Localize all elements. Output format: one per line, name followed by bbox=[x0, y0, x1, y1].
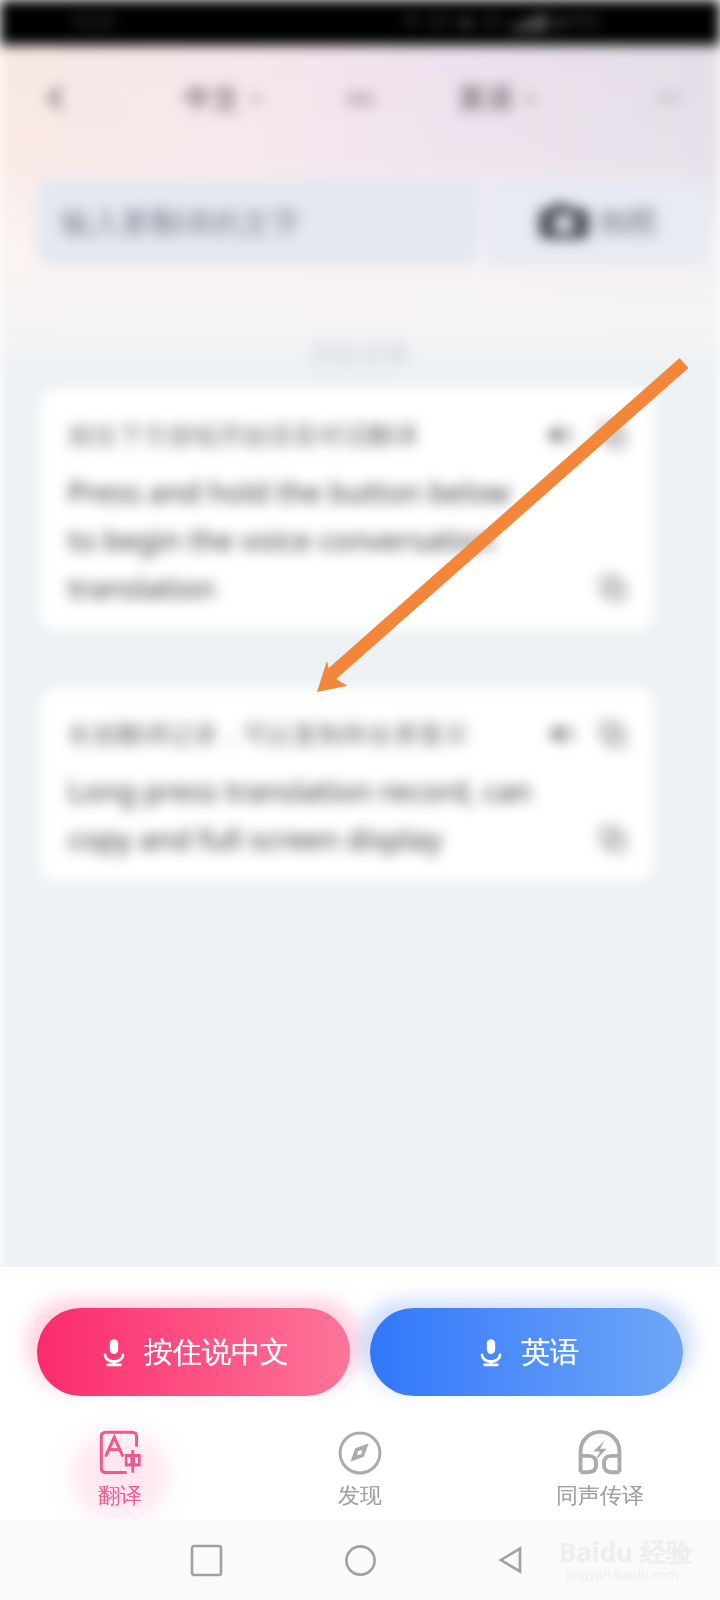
button[interactable]: 拍照 bbox=[485, 180, 709, 265]
staticText: Baidu 经验 bbox=[559, 1534, 692, 1570]
button[interactable]: 按住下方按钮开始语音对话翻译 bbox=[40, 388, 654, 631]
button[interactable]: 发现 bbox=[240, 1429, 480, 1510]
button[interactable]: Home bbox=[335, 1535, 385, 1585]
button[interactable]: 英语 bbox=[454, 75, 540, 122]
button[interactable]: Play audio bbox=[544, 715, 582, 753]
button[interactable]: Copy bbox=[594, 569, 632, 607]
staticText: 发现 bbox=[338, 1482, 382, 1510]
staticText: 10:24 bbox=[70, 9, 114, 32]
staticText: Long press translation record, can copy … bbox=[68, 771, 594, 858]
button[interactable]: 长按翻译记录，可以复制和全屏显示 bbox=[40, 687, 654, 882]
button[interactable]: 英语 bbox=[370, 1308, 683, 1396]
button[interactable]: Back bbox=[30, 73, 80, 123]
button[interactable]: 按住说中文 bbox=[37, 1308, 350, 1396]
staticText: Press and hold the button below to begin… bbox=[68, 472, 594, 607]
button[interactable]: 输入要翻译的文字 bbox=[37, 180, 478, 265]
button[interactable]: Back bbox=[484, 1533, 538, 1587]
staticText: 输入要翻译的文字 bbox=[61, 204, 301, 242]
button[interactable]: Swap languages bbox=[338, 77, 382, 121]
staticText: 历史记录 bbox=[310, 338, 410, 369]
button[interactable]: Copy bbox=[594, 416, 632, 454]
button[interactable]: Copy bbox=[594, 715, 632, 753]
staticText: 中文 bbox=[184, 81, 240, 116]
button[interactable]: Copy bbox=[594, 820, 632, 858]
staticText: 同声传译 bbox=[556, 1482, 644, 1510]
staticText: 英语 bbox=[458, 81, 514, 116]
staticText: 翻译 bbox=[98, 1482, 142, 1510]
staticText: 按住下方按钮开始语音对话翻译 bbox=[68, 420, 418, 451]
button[interactable]: 翻译 bbox=[0, 1429, 240, 1515]
staticText: 按住说中文 bbox=[144, 1334, 289, 1371]
button[interactable]: Recents bbox=[179, 1533, 233, 1587]
staticText: ⚑ HD ▣ 4G ▃▅▇ ▮ 85% bbox=[404, 10, 601, 32]
staticText: jingyan.baidu.com bbox=[566, 1565, 679, 1583]
button[interactable]: 同声传译 bbox=[480, 1429, 720, 1510]
staticText: 英语 bbox=[521, 1334, 579, 1371]
button[interactable]: 中文 bbox=[180, 75, 266, 122]
button[interactable]: Play audio bbox=[542, 416, 580, 454]
staticText: 拍照 bbox=[599, 204, 657, 241]
button[interactable]: More options bbox=[644, 73, 694, 123]
staticText: 长按翻译记录，可以复制和全屏显示 bbox=[68, 719, 468, 750]
